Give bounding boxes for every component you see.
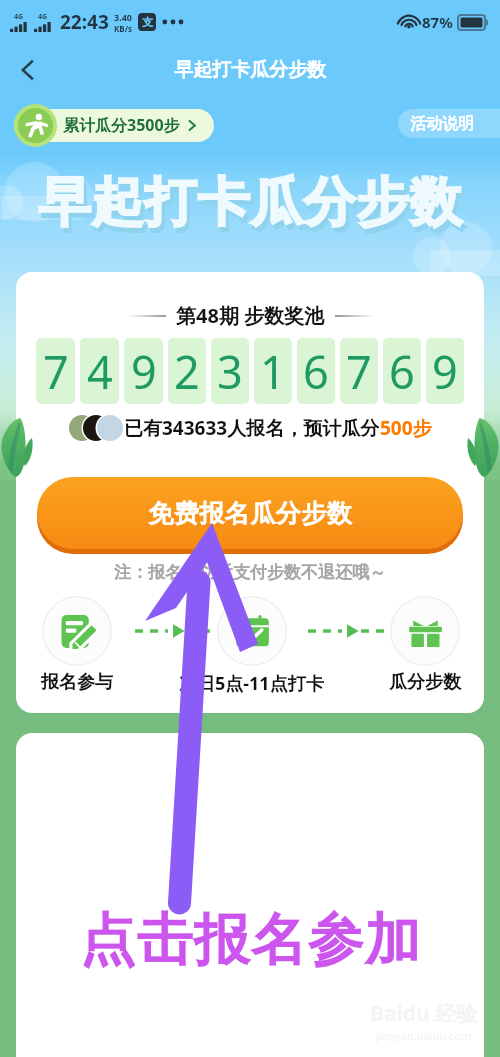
staticText: 次日5点-11点打卡 xyxy=(179,671,324,696)
staticText: 累计瓜分3500步 xyxy=(63,114,180,136)
staticText: 瓜分步数 xyxy=(389,671,461,694)
staticText: 6 xyxy=(389,341,415,402)
button[interactable]: 活动说明 xyxy=(398,109,500,138)
button[interactable]: 报名参与 xyxy=(41,596,113,694)
button[interactable]: 次日5点-11点打卡 xyxy=(179,596,324,696)
staticText: 3 xyxy=(217,341,243,402)
staticText: 支 xyxy=(142,15,153,29)
staticText: 早起打卡瓜分步数 xyxy=(38,170,462,236)
staticText: 3.40 xyxy=(114,11,132,23)
staticText: 点击报名参加 xyxy=(79,905,421,976)
staticText: 6 xyxy=(303,341,329,402)
staticText: 已有343633人报名，预计瓜分 xyxy=(124,415,380,441)
staticText: 22:43 xyxy=(60,9,109,35)
staticText: 免费报名瓜分步数 xyxy=(148,498,352,529)
staticText: 早起打卡瓜分步数 xyxy=(174,58,326,82)
staticText: jingyan.baidu.com xyxy=(376,1028,472,1043)
staticText: 7 xyxy=(346,341,372,402)
staticText: 4G xyxy=(38,12,48,22)
staticText: 500步 xyxy=(380,415,432,441)
staticText: 2 xyxy=(174,341,200,402)
staticText: 第48期 步数奖池 xyxy=(176,302,325,329)
button[interactable]: Back xyxy=(6,48,50,92)
staticText: 活动说明 xyxy=(410,114,474,134)
button[interactable]: 免费报名瓜分步数 xyxy=(37,477,463,549)
staticText: 1 xyxy=(260,341,286,402)
staticText: 4 xyxy=(87,341,113,402)
button[interactable]: 瓜分步数 xyxy=(389,596,461,694)
staticText: 9 xyxy=(432,341,458,402)
staticText: 87% xyxy=(422,12,453,32)
staticText: 报名参与 xyxy=(41,671,113,694)
staticText: 注：报名成功后支付步数不退还哦～ xyxy=(114,562,386,583)
staticText: Baidu 经验 xyxy=(370,999,478,1028)
button[interactable] xyxy=(14,109,214,142)
staticText: 9 xyxy=(131,341,157,402)
staticText: 4G xyxy=(14,12,24,22)
staticText: 早起打卡瓜分步数 xyxy=(41,175,465,241)
staticText: 7 xyxy=(43,341,69,402)
staticText: KB/s xyxy=(114,23,132,34)
